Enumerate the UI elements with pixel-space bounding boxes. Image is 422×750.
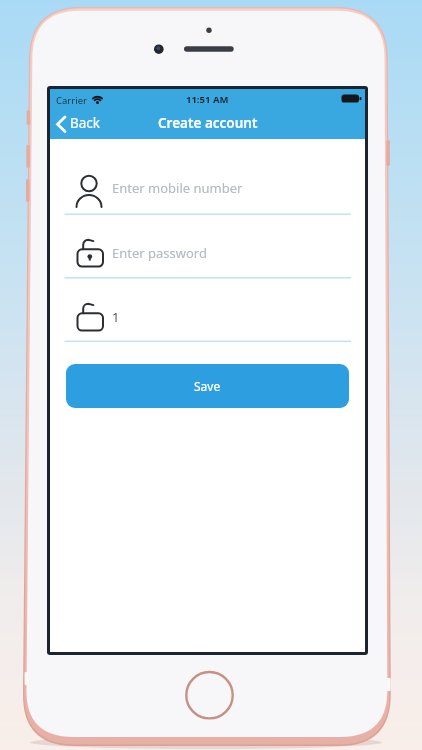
button[interactable]: Back	[70, 114, 101, 132]
staticText: 1	[112, 308, 120, 326]
staticText: Create account	[158, 114, 258, 132]
staticText: Back	[70, 114, 101, 132]
staticText: Save	[194, 378, 221, 394]
button[interactable]: Enter mobile number	[112, 178, 312, 198]
staticText: 11:51 AM	[186, 93, 229, 106]
button[interactable]: 1	[112, 307, 312, 327]
button[interactable]: Enter password	[112, 243, 312, 263]
staticText: Enter password	[112, 244, 207, 262]
button[interactable]: Save	[66, 364, 349, 408]
staticText: Carrier	[56, 94, 87, 107]
staticText: Enter mobile number	[112, 179, 243, 197]
